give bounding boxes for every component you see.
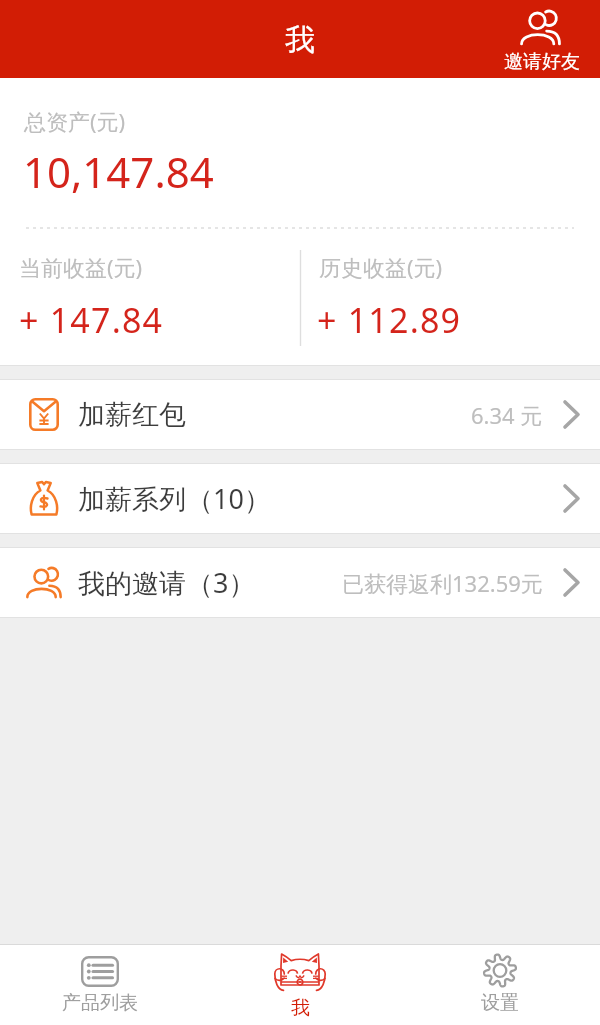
staticText: + 147.84 [19,297,164,343]
button[interactable]: 我 [200,945,400,1025]
button[interactable]: 设置 [400,945,600,1025]
staticText: 产品列表 [62,991,138,1015]
staticText: 邀请好友 [504,50,580,74]
button[interactable]: 加薪红包 [0,380,600,449]
staticText: 我 [285,21,315,59]
staticText: + 112.89 [317,297,462,343]
staticText: 历史收益(元) [319,252,443,282]
staticText: 我 [291,996,310,1020]
button[interactable]: 产品列表 [0,945,200,1025]
staticText: 加薪红包 [78,398,186,432]
button[interactable]: 加薪系列（10） [0,464,600,533]
staticText: 已获得返利132.59元 [342,568,543,598]
staticText: 6.34 元 [471,400,543,430]
staticText: 设置 [481,991,519,1015]
staticText: 我的邀请（3） [78,564,256,601]
button[interactable]: 我的邀请（3） [0,548,600,617]
staticText: 加薪系列（10） [78,480,271,517]
staticText: 当前收益(元) [19,252,143,282]
button[interactable]: 邀请好友 [494,0,588,78]
staticText: 总资产(元) [24,106,126,136]
staticText: 10,147.84 [23,143,214,200]
